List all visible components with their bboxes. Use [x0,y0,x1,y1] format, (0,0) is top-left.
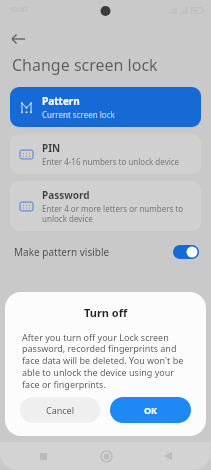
staticText: Enter 4 or more letters or numbers to un… [42,203,193,224]
staticText: Pattern [42,94,80,108]
staticText: Change screen lock [12,54,158,76]
button[interactable]: Pattern [10,87,201,127]
staticText: Cancel [46,404,75,416]
staticText: Current screen lock [42,109,115,120]
button[interactable]: OK [110,397,191,423]
button[interactable]: Make pattern visible [0,240,211,264]
staticText: OK [144,404,158,416]
staticText: Password [42,188,90,202]
staticText: PIN [42,141,61,155]
button[interactable]: PIN [10,134,201,174]
staticText: Make pattern visible [14,245,110,259]
button[interactable]: Cancel [20,397,100,423]
button[interactable]: Back [7,26,33,52]
staticText: Enter 4-16 numbers to unlock device [42,156,180,167]
staticText: Turn off [84,305,128,320]
button[interactable]: Recents [33,446,53,466]
staticText: 10:00 [9,5,27,15]
button[interactable]: Back [158,446,178,466]
button[interactable]: Home [96,446,116,466]
staticText: After you turn off your Lock screen pass… [22,331,189,391]
button[interactable]: Password [10,181,201,231]
